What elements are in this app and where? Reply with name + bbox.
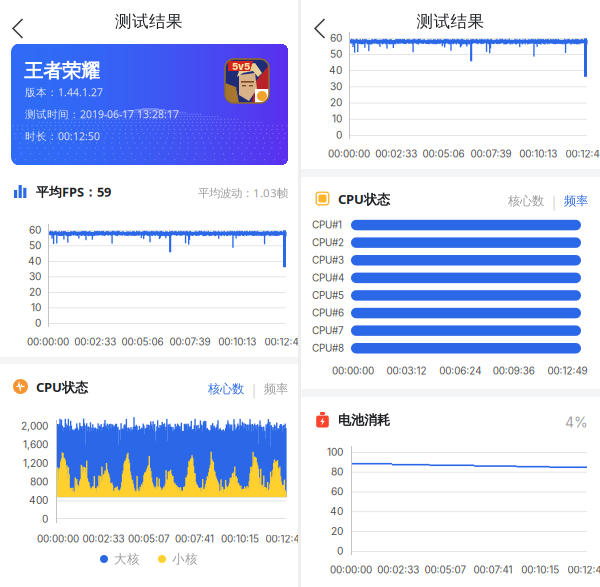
staticText: 1,200 xyxy=(23,457,48,469)
staticText: 1,600 xyxy=(23,438,48,451)
staticText: 30 xyxy=(330,80,342,93)
staticText: 10 xyxy=(332,113,342,125)
staticText: 20 xyxy=(331,525,343,537)
staticText: 00:10:13 xyxy=(519,148,557,160)
staticText: 王者荣耀 xyxy=(24,59,100,83)
staticText: 00:06:24 xyxy=(439,365,481,377)
staticText: 00:12:49 xyxy=(264,336,304,348)
staticText: 00:02:33 xyxy=(74,336,116,348)
staticText: 400 xyxy=(29,494,48,507)
staticText: 5v5 xyxy=(232,61,250,72)
staticText: 00:05:06 xyxy=(122,336,164,348)
staticText: 00:12:49 xyxy=(265,533,305,545)
staticText: 版本：1.44.1.27 xyxy=(25,85,103,99)
staticText: 00:09:36 xyxy=(493,365,535,377)
staticText: 00:10:13 xyxy=(218,336,256,348)
staticText: 0 xyxy=(35,317,41,329)
button[interactable]: 频率 xyxy=(564,193,588,209)
staticText: 80 xyxy=(331,466,343,478)
staticText: CPU状态 xyxy=(36,378,88,396)
staticText: 30 xyxy=(29,270,41,283)
staticText: 00:02:33 xyxy=(377,564,419,576)
staticText: 00:10:15 xyxy=(221,533,259,545)
staticText: 核心数 xyxy=(508,193,544,209)
staticText: CPU#3 xyxy=(312,254,344,266)
staticText: 00:07:41 xyxy=(473,564,512,576)
staticText: | xyxy=(250,379,258,399)
staticText: 60 xyxy=(330,32,342,44)
button[interactable]: 核心数 xyxy=(208,381,244,397)
staticText: 00:02:33 xyxy=(375,148,417,160)
staticText: 测试结果 xyxy=(416,11,484,32)
button[interactable]: 返回 xyxy=(0,9,34,48)
staticText: 00:12:49 xyxy=(547,365,587,377)
staticText: 40 xyxy=(329,64,342,76)
staticText: 测试时间：2019-06-17 13:28:17 xyxy=(25,107,179,121)
staticText: | xyxy=(550,191,558,211)
staticText: 平均FPS：59 xyxy=(36,183,111,200)
staticText: 2,000 xyxy=(21,420,48,432)
staticText: 0 xyxy=(337,545,343,557)
staticText: 频率 xyxy=(564,193,588,209)
staticText: 00:00:00 xyxy=(37,533,79,545)
staticText: 00:00:00 xyxy=(330,564,372,576)
staticText: CPU#4 xyxy=(312,272,344,284)
staticText: 60 xyxy=(29,224,41,236)
staticText: 100 xyxy=(327,446,343,458)
staticText: 10 xyxy=(31,301,41,314)
staticText: 20 xyxy=(29,286,41,298)
staticText: 50 xyxy=(330,48,342,60)
staticText: CPU#8 xyxy=(312,342,344,354)
staticText: 00:07:39 xyxy=(169,336,210,348)
staticText: 平均波动：1.03帧 xyxy=(198,185,288,201)
staticText: 00:05:07 xyxy=(425,564,467,576)
staticText: 频率 xyxy=(264,381,288,397)
staticText: 00:00:00 xyxy=(27,336,69,348)
staticText: 00:00:00 xyxy=(328,148,370,160)
staticText: 时长：00:12:50 xyxy=(25,129,100,143)
staticText: CPU#6 xyxy=(312,307,344,319)
staticText: 40 xyxy=(330,505,343,518)
staticText: 00:07:41 xyxy=(175,533,214,545)
staticText: 800 xyxy=(30,476,48,488)
staticText: 00:03:12 xyxy=(387,365,427,377)
staticText: 小核 xyxy=(172,551,198,567)
staticText: 20 xyxy=(330,96,342,109)
staticText: 40 xyxy=(28,255,41,267)
staticText: 0 xyxy=(336,129,342,141)
staticText: CPU#5 xyxy=(312,289,344,301)
button[interactable]: 核心数 xyxy=(508,193,544,209)
staticText: 50 xyxy=(29,239,41,252)
staticText: 核心数 xyxy=(208,381,244,397)
staticText: 00:07:39 xyxy=(470,148,511,160)
staticText: 电池消耗 xyxy=(338,412,390,428)
staticText: CPU状态 xyxy=(338,190,390,208)
staticText: 00:00:00 xyxy=(332,365,374,377)
staticText: 00:05:06 xyxy=(423,148,465,160)
staticText: 测试结果 xyxy=(115,11,183,32)
staticText: CPU#2 xyxy=(312,237,344,248)
staticText: CPU#7 xyxy=(312,325,344,336)
staticText: 00:12:49 xyxy=(565,148,600,160)
staticText: 00:05:07 xyxy=(128,533,170,545)
button[interactable]: 频率 xyxy=(264,381,288,397)
staticText: 大核 xyxy=(114,551,140,567)
staticText: CPU#1 xyxy=(312,219,342,231)
staticText: 0 xyxy=(42,513,48,525)
staticText: 00:02:33 xyxy=(82,533,124,545)
staticText: 00:12:49 xyxy=(567,564,600,576)
staticText: 4% xyxy=(565,414,588,431)
staticText: 00:10:15 xyxy=(521,564,559,576)
staticText: 60 xyxy=(331,485,343,498)
button[interactable]: 返回 xyxy=(301,9,336,48)
